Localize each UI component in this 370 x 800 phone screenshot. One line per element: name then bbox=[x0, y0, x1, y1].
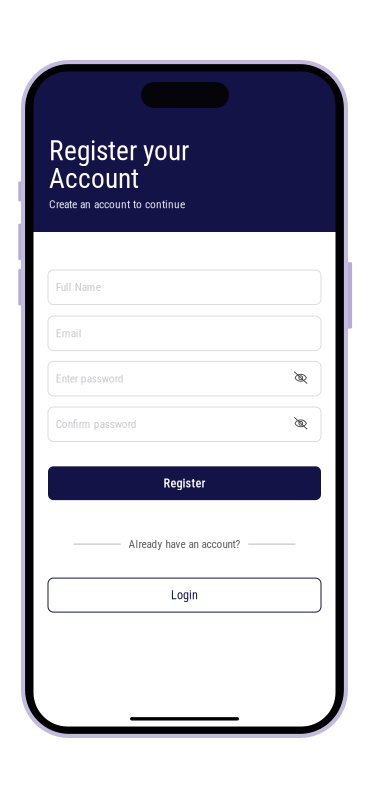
button[interactable]: Confirm password bbox=[48, 407, 321, 441]
staticText: Create an account to continue bbox=[49, 198, 185, 211]
button[interactable]: Register bbox=[48, 466, 321, 500]
staticText: Email bbox=[56, 327, 82, 340]
button[interactable]: Email bbox=[48, 316, 321, 351]
staticText: Register bbox=[163, 476, 205, 490]
staticText: Already have an account? bbox=[128, 537, 240, 551]
staticText: Confirm password bbox=[56, 418, 137, 431]
button[interactable]: Enter password bbox=[48, 361, 321, 396]
staticText: Enter password bbox=[56, 372, 124, 385]
button[interactable]: Login bbox=[48, 578, 321, 612]
staticText: Account bbox=[49, 163, 139, 195]
staticText: Full Name bbox=[56, 281, 101, 294]
staticText: Register your bbox=[49, 135, 189, 167]
button[interactable]: Full Name bbox=[48, 270, 321, 304]
staticText: Login bbox=[171, 588, 198, 602]
